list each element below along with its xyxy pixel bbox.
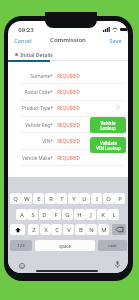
staticText: REQUIRED (57, 73, 80, 79)
staticText: Validate VIN Lookup (96, 140, 121, 151)
button[interactable]: C (51, 224, 62, 235)
button[interactable]: N (86, 224, 97, 235)
staticText: Vehicle Make* (22, 155, 53, 161)
button[interactable]: B (75, 224, 86, 235)
button[interactable]: A (16, 209, 27, 220)
button[interactable]: Initial Details (15, 51, 53, 58)
staticText: G (65, 211, 70, 219)
staticText: A (20, 211, 24, 219)
button[interactable]: Q (10, 193, 21, 204)
button[interactable]: Dictation (115, 261, 120, 268)
staticText: Surname* (30, 73, 53, 79)
staticText: U (82, 195, 87, 203)
staticText: REQUIRED (57, 89, 80, 95)
button[interactable]: F (50, 209, 61, 220)
staticText: Initial Details (20, 51, 53, 58)
button[interactable]: Validate VIN Lookup (90, 137, 126, 153)
staticText: M (101, 226, 107, 234)
button[interactable]: Save (108, 36, 123, 46)
button[interactable]: Vehicle Lookup (90, 117, 126, 133)
button[interactable]: Y (68, 193, 79, 204)
button[interactable]: Shift (10, 224, 25, 235)
staticText: K (101, 211, 105, 219)
button[interactable]: space (35, 240, 95, 251)
staticText: Commission (50, 36, 86, 44)
button[interactable]: Z (28, 224, 39, 235)
staticText: P (118, 195, 122, 203)
button[interactable]: Backspace (112, 224, 126, 235)
button[interactable]: E (33, 193, 44, 204)
button[interactable]: 123 (10, 240, 32, 251)
staticText: O (106, 195, 111, 203)
staticText: Y (72, 195, 76, 203)
button[interactable] (8, 99, 128, 116)
button[interactable]: W (21, 193, 32, 204)
staticText: 09:23 (18, 26, 34, 34)
staticText: Vehicle Reg* (25, 122, 53, 128)
staticText: REQUIRED (57, 122, 80, 128)
button[interactable]: next (98, 240, 127, 251)
staticText: Save (109, 37, 122, 45)
staticText: VIN* (42, 138, 53, 144)
staticText: C (55, 226, 59, 234)
staticText: J (90, 211, 92, 219)
staticText: T (60, 195, 64, 203)
button[interactable]: Emoji keyboard (19, 263, 25, 269)
button[interactable]: U (79, 193, 90, 204)
button[interactable]: M (98, 224, 109, 235)
staticText: Product Type* (22, 105, 53, 111)
button[interactable] (8, 149, 128, 166)
staticText: Vehicle Lookup (100, 120, 116, 131)
button[interactable]: T (56, 193, 67, 204)
staticText: D (42, 211, 47, 219)
staticText: Cancel (14, 37, 32, 45)
staticText: F (54, 211, 58, 219)
staticText: E (37, 195, 41, 203)
staticText: X (44, 226, 48, 234)
staticText: Postal Code* (24, 89, 53, 95)
button[interactable] (8, 83, 128, 100)
staticText: R (49, 195, 53, 203)
staticText: REQUIRED (57, 105, 80, 111)
staticText: S (31, 211, 35, 219)
button[interactable]: R (45, 193, 56, 204)
button[interactable]: J (85, 209, 96, 220)
staticText: N (89, 226, 94, 234)
staticText: Q (13, 195, 18, 203)
staticText: next (108, 243, 117, 249)
button[interactable]: S (27, 209, 38, 220)
button[interactable] (8, 132, 128, 149)
button[interactable]: O (103, 193, 114, 204)
button[interactable]: H (74, 209, 85, 220)
button[interactable]: D (39, 209, 50, 220)
button[interactable]: G (62, 209, 73, 220)
staticText: I (96, 195, 98, 203)
button[interactable] (8, 116, 128, 133)
staticText: REQUIRED (57, 138, 80, 144)
button[interactable]: L (108, 209, 119, 220)
staticText: L (112, 211, 116, 219)
staticText: 123 (17, 243, 25, 249)
staticText: REQUIRED (57, 155, 80, 161)
staticText: B (79, 226, 83, 234)
staticText: H (77, 211, 82, 219)
staticText: V (67, 226, 71, 234)
staticText: Z (32, 226, 36, 234)
button[interactable]: X (40, 224, 51, 235)
staticText: space (59, 243, 71, 249)
button[interactable] (8, 67, 128, 84)
button[interactable]: Cancel (13, 36, 33, 46)
staticText: W (24, 195, 30, 203)
button[interactable]: P (114, 193, 125, 204)
button[interactable]: V (63, 224, 74, 235)
button[interactable]: K (97, 209, 108, 220)
button[interactable]: I (91, 193, 102, 204)
